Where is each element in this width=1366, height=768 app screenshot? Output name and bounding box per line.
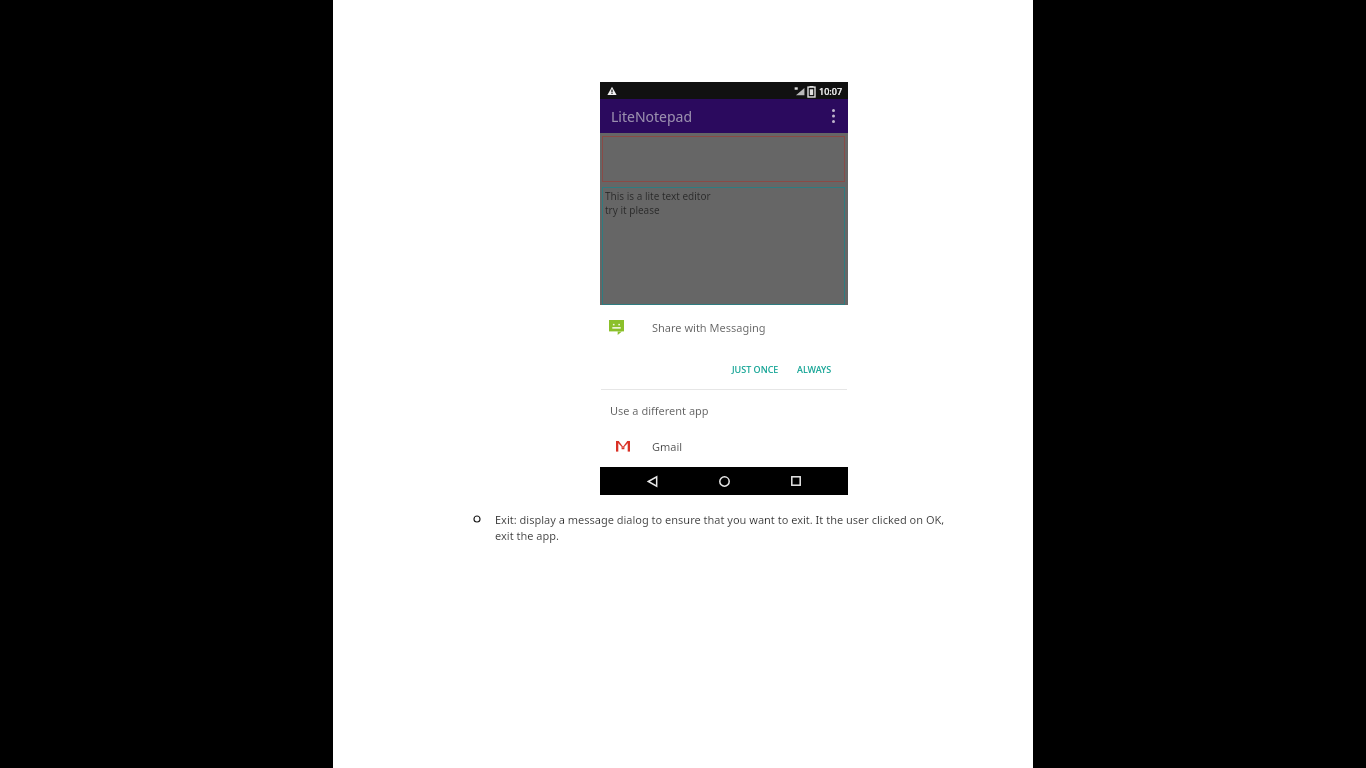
staticText: This is a lite text editor [605,189,711,203]
button[interactable]: Recent apps [776,467,816,495]
button[interactable]: Back [632,467,672,495]
button[interactable]: This is a lite text editor [602,187,845,305]
staticText: LiteNotepad [611,107,693,126]
staticText: Gmail [652,439,683,454]
staticText: try it please [605,203,660,217]
button[interactable]: Home [704,467,744,495]
staticText: ALWAYS [797,363,832,375]
button[interactable]: More options [818,101,848,131]
button[interactable]: ALWAYS [791,359,838,379]
button[interactable]: Share with Messaging [600,315,848,339]
staticText: Use a different app [610,403,709,418]
button[interactable] [602,136,845,182]
staticText: Exit: display a message dialog to ensure… [495,512,953,544]
staticText: Share with Messaging [652,320,766,335]
button[interactable]: Gmail [600,434,848,458]
staticText: 10:07 [819,85,843,97]
button[interactable]: JUST ONCE [726,359,785,379]
staticText: JUST ONCE [732,363,779,375]
